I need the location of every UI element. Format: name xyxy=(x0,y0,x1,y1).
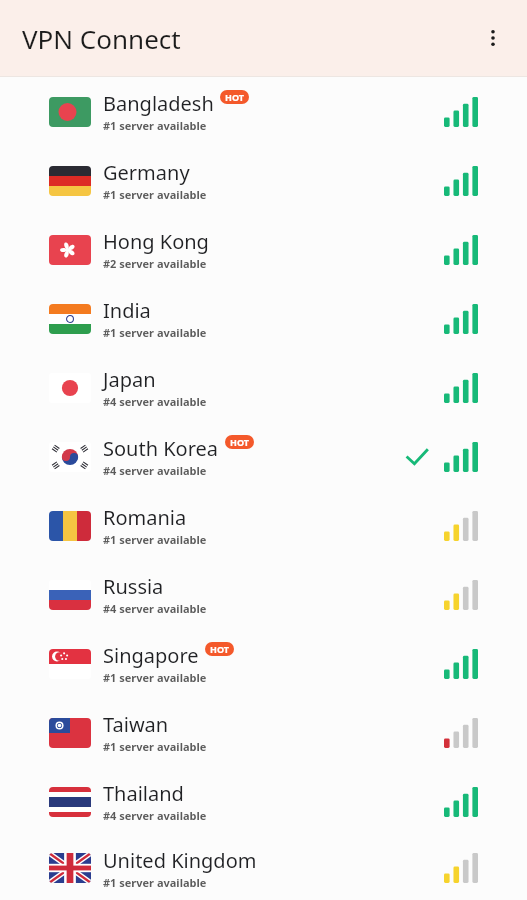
staticText: #4 server available xyxy=(103,394,207,409)
button[interactable]: Taiwan xyxy=(0,698,527,767)
staticText: HOT xyxy=(225,91,244,103)
staticText: United Kingdom xyxy=(103,847,257,874)
button[interactable]: Bangladesh xyxy=(0,77,527,146)
staticText: Japan xyxy=(103,366,156,393)
staticText: Russia xyxy=(103,573,164,600)
staticText: #1 server available xyxy=(103,118,207,133)
staticText: #2 server available xyxy=(103,256,207,271)
staticText: #4 server available xyxy=(103,808,207,823)
button[interactable]: Russia xyxy=(0,560,527,629)
button[interactable]: Hong Kong xyxy=(0,215,527,284)
button[interactable]: Thailand xyxy=(0,767,527,836)
button[interactable]: More options xyxy=(469,14,517,62)
staticText: Thailand xyxy=(103,780,184,807)
button[interactable]: Singapore xyxy=(0,629,527,698)
staticText: #1 server available xyxy=(103,187,207,202)
button[interactable]: Germany xyxy=(0,146,527,215)
staticText: #1 server available xyxy=(103,670,207,685)
staticText: Hong Kong xyxy=(103,228,209,255)
button[interactable]: India xyxy=(0,284,527,353)
staticText: #1 server available xyxy=(103,532,207,547)
staticText: India xyxy=(103,297,151,324)
staticText: #4 server available xyxy=(103,601,207,616)
staticText: VPN Connect xyxy=(22,21,181,56)
staticText: Singapore xyxy=(103,642,199,669)
staticText: HOT xyxy=(230,436,249,448)
staticText: Taiwan xyxy=(103,711,169,738)
staticText: HOT xyxy=(210,643,229,655)
button[interactable]: Japan xyxy=(0,353,527,422)
button[interactable]: United Kingdom xyxy=(0,836,527,900)
staticText: Germany xyxy=(103,159,190,186)
button[interactable]: South Korea xyxy=(0,422,527,491)
staticText: South Korea xyxy=(103,435,219,462)
staticText: #4 server available xyxy=(103,463,207,478)
staticText: Romania xyxy=(103,504,187,531)
button[interactable]: Romania xyxy=(0,491,527,560)
staticText: #1 server available xyxy=(103,875,207,890)
staticText: Bangladesh xyxy=(103,90,214,117)
staticText: #1 server available xyxy=(103,739,207,754)
staticText: #1 server available xyxy=(103,325,207,340)
